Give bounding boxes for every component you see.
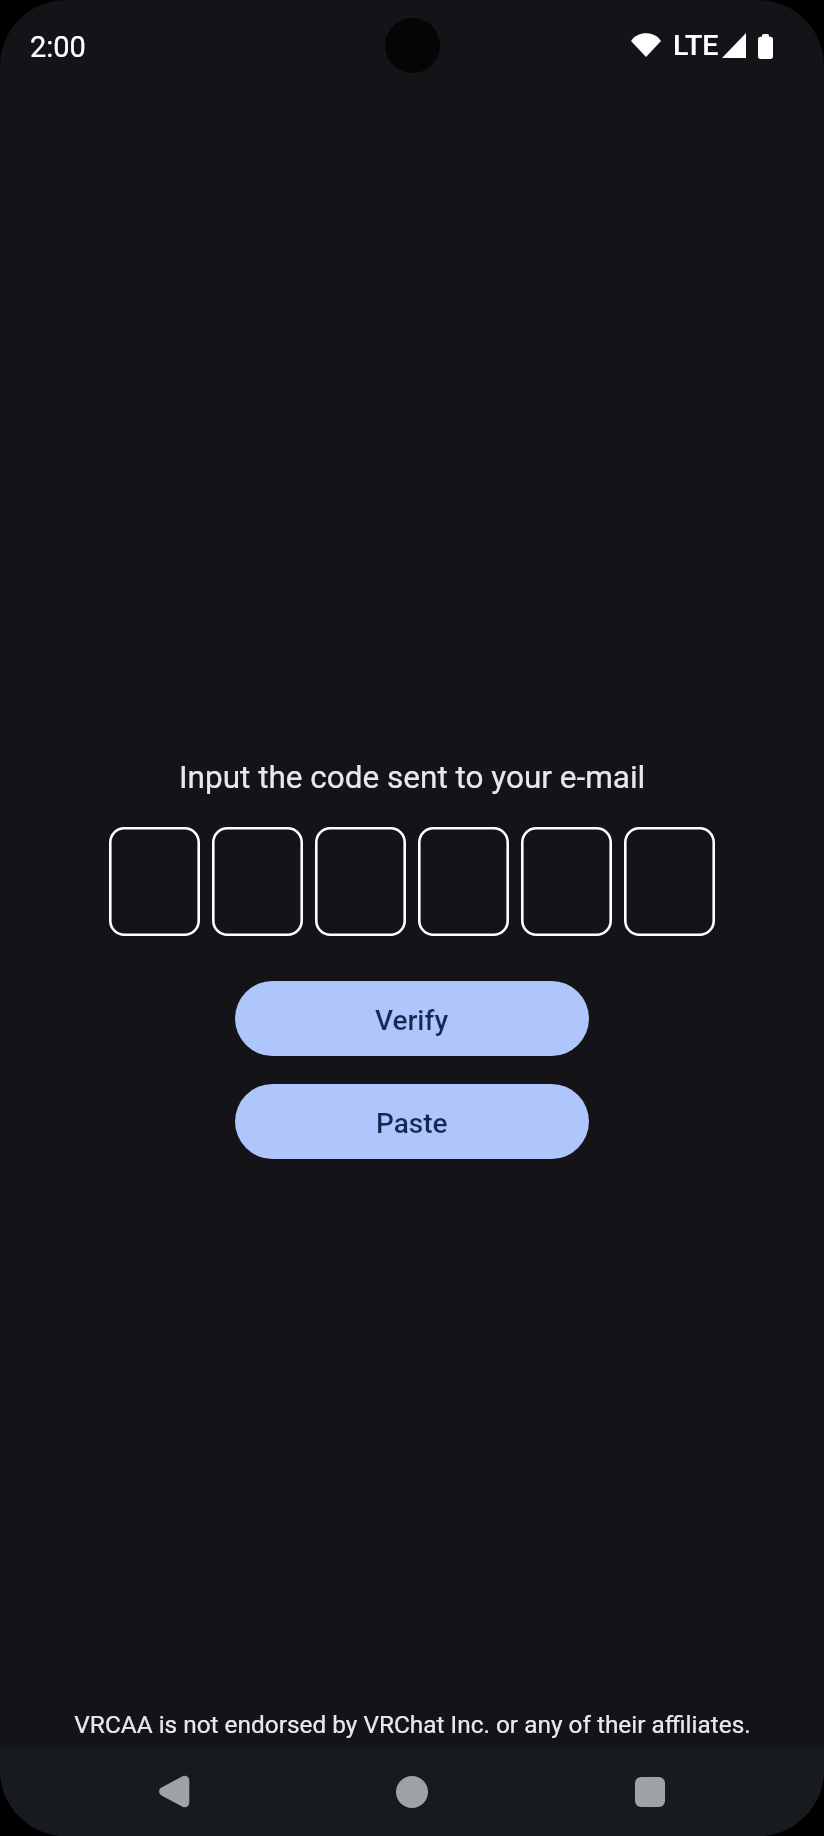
button[interactable]: Verify xyxy=(235,981,589,1056)
button[interactable]: Code digit 1 xyxy=(109,827,200,936)
other: Mobile signal xyxy=(722,33,746,58)
button[interactable]: Home xyxy=(357,1747,467,1836)
button[interactable]: Code digit 4 xyxy=(418,827,509,936)
staticText: Paste xyxy=(376,1107,448,1140)
button[interactable]: Paste xyxy=(235,1084,589,1159)
button[interactable]: Recent apps xyxy=(595,1747,705,1836)
button[interactable]: Back xyxy=(118,1747,228,1836)
staticText: LTE xyxy=(673,29,719,62)
other: Wi-Fi xyxy=(631,33,661,57)
button[interactable]: Code digit 3 xyxy=(315,827,406,936)
staticText: Verify xyxy=(375,1004,449,1037)
staticText: 2:00 xyxy=(30,30,86,64)
other: Battery xyxy=(758,34,773,59)
button[interactable]: Code digit 6 xyxy=(624,827,715,936)
button[interactable]: Code digit 5 xyxy=(521,827,612,936)
staticText: VRCAA is not endorsed by VRChat Inc. or … xyxy=(74,1710,751,1739)
staticText: Input the code sent to your e-mail xyxy=(179,759,646,796)
button[interactable]: Code digit 2 xyxy=(212,827,303,936)
